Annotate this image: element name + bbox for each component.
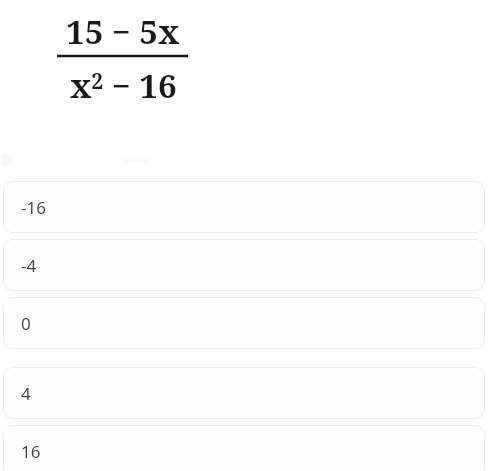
staticText: -4 <box>21 254 37 277</box>
button[interactable]: -4 <box>3 239 485 291</box>
staticText: 16 <box>21 440 41 463</box>
staticText: -16 <box>21 196 46 219</box>
button[interactable]: 0 <box>3 297 485 349</box>
button[interactable]: -16 <box>3 181 485 233</box>
button[interactable]: 4 <box>3 367 485 419</box>
button[interactable]: 16 <box>3 425 485 471</box>
staticText: 4 <box>21 382 31 405</box>
staticText: 0 <box>21 312 31 335</box>
staticText: 15 − 5x <box>66 9 180 54</box>
staticText: x2 − 16 <box>70 63 177 108</box>
